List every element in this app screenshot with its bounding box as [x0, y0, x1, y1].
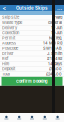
button[interactable]: Confirm booking [1, 77, 62, 86]
staticText: General [48, 20, 62, 25]
staticText: Waste Type [2, 20, 22, 25]
staticText: 14 days [48, 61, 62, 66]
button[interactable]: Orders [26, 113, 38, 122]
button[interactable]: Search [13, 113, 26, 122]
button[interactable]: More [56, 4, 62, 12]
staticText: £50.00 [49, 66, 62, 71]
staticText: … [57, 5, 62, 11]
staticText: Outside Skips [16, 5, 48, 11]
staticText: Permit [2, 36, 15, 40]
staticText: #10492 [47, 56, 62, 61]
button[interactable]: Home [0, 113, 13, 122]
button[interactable]: Back [1, 4, 7, 12]
staticText: Hire [2, 61, 9, 66]
staticText: Skip Size [2, 15, 19, 20]
staticText: Address [2, 41, 16, 45]
staticText: Ref [2, 56, 8, 61]
staticText: £245.00 [46, 72, 62, 76]
staticText: Postcode [2, 46, 18, 51]
staticText: 8 Yard [52, 15, 62, 20]
staticText: Deposit [2, 66, 15, 71]
button[interactable]: Alerts [38, 113, 51, 122]
staticText: Delivery [2, 25, 17, 30]
staticText: < [2, 5, 6, 11]
staticText: Driver [2, 51, 14, 56]
staticText: Confirm booking [16, 79, 48, 84]
staticText: Not req. [49, 36, 62, 40]
staticText: 12 Jun [51, 25, 62, 30]
staticText: J. Smith [47, 51, 62, 56]
staticText: Total [2, 72, 10, 76]
staticText: SW1 4AB [43, 46, 62, 51]
staticText: Collection [2, 30, 19, 35]
staticText: 19 Jun [51, 30, 62, 35]
staticText: 14 Mill Rd [43, 41, 62, 45]
button[interactable]: Profile [51, 113, 64, 122]
